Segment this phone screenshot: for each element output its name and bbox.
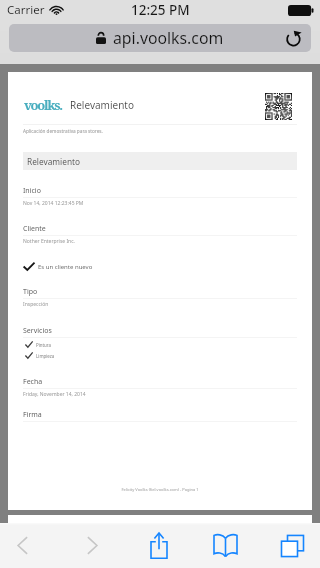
button[interactable]: Go back xyxy=(0,523,45,568)
button[interactable]: Limpieza xyxy=(25,352,55,359)
button[interactable]: Bookmarks xyxy=(202,523,248,568)
staticText: Friday, November 14, 2014 xyxy=(23,391,86,398)
button[interactable]: Reload page xyxy=(283,27,305,49)
button[interactable]: Es un cliente nuevo xyxy=(23,262,93,271)
button[interactable]: api.voolks.com xyxy=(9,24,311,52)
button[interactable]: Share xyxy=(136,523,182,568)
staticText: Inicio xyxy=(23,186,41,196)
staticText: Nother Enterprise Inc. xyxy=(23,238,75,245)
staticText: api.voolks.com xyxy=(113,27,224,49)
staticText: voolks. xyxy=(24,96,62,114)
staticText: Aplicación demostrativa para stores. xyxy=(23,128,103,134)
staticText: Carrier xyxy=(7,2,45,18)
staticText: Tipo xyxy=(23,287,38,297)
button[interactable]: Pintura xyxy=(25,341,51,348)
staticText: Servicios xyxy=(23,326,52,336)
staticText: Fecha xyxy=(23,377,43,387)
staticText: Nov 14, 2014 12:23:45 PM xyxy=(23,200,84,207)
staticText: Es un cliente nuevo xyxy=(38,263,93,271)
staticText: Inspección xyxy=(23,301,49,308)
staticText: Relevamiento xyxy=(27,156,81,167)
staticText: Pintura xyxy=(36,342,51,348)
button[interactable]: Go forward xyxy=(69,523,115,568)
staticText: 12:25 PM xyxy=(131,1,190,19)
staticText: Cliente xyxy=(23,224,46,234)
staticText: Firma xyxy=(23,410,42,420)
button[interactable]: Tabs xyxy=(269,523,315,568)
staticText: Relevamiento xyxy=(70,98,134,112)
staticText: Felicity Voolks (fiel.voolks.com) - Pagi… xyxy=(0,487,320,492)
staticText: Limpieza xyxy=(36,353,55,359)
